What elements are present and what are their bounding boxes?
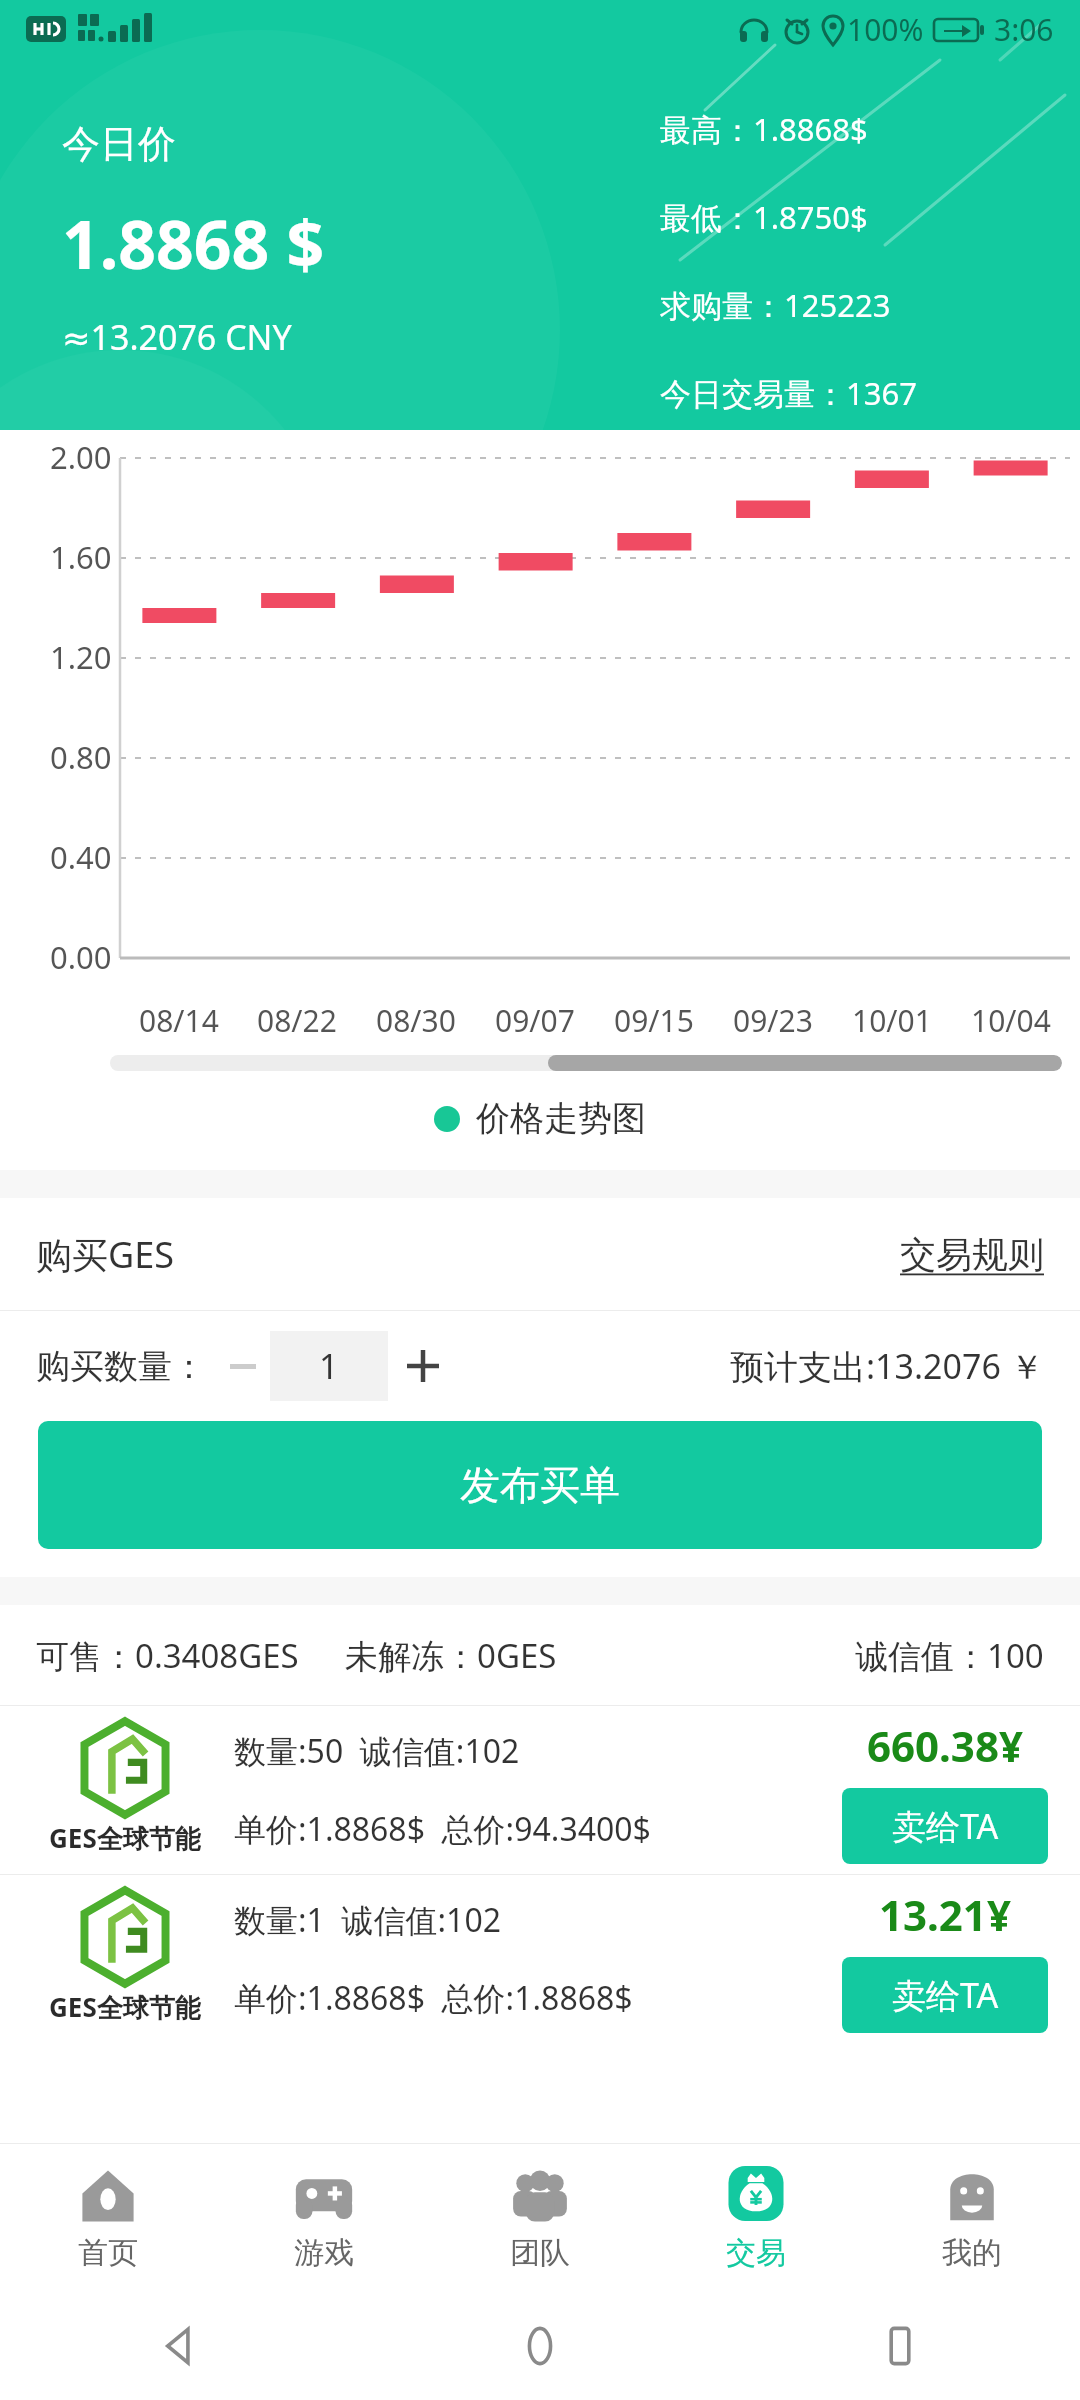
button[interactable]: GES全球节能 [0,1706,1080,1874]
staticText: 13.21¥ [879,1886,1011,1943]
staticText: 08/22 [257,1000,337,1041]
staticText: 1.8868 $ [62,198,325,288]
staticText: 09/23 [733,1000,813,1041]
staticText: 3:06 [994,9,1054,50]
staticText: 最低：1.8750$ [660,196,868,238]
staticText: 卖给TA [892,1972,999,2018]
button[interactable]: 我的 [864,2144,1080,2292]
staticText: 今日交易量：1367 [660,372,917,414]
staticText: 数量:1 诚信值:102 [234,1898,502,1942]
staticText: 1 [319,1343,339,1389]
staticText: GES全球节能 [49,1820,201,1856]
staticText: 10/04 [971,1000,1051,1041]
staticText: 08/30 [376,1000,456,1041]
staticText: 09/15 [614,1000,694,1041]
staticText: 预计支出:13.2076 ￥ [730,1343,1044,1389]
staticText: 09/07 [495,1000,575,1041]
staticText: 发布买单 [460,1460,620,1510]
staticText: 价格走势图 [476,1097,646,1140]
staticText: 求购量：125223 [660,284,891,326]
staticText: 团队 [510,2234,570,2272]
staticText: 1.60 [50,536,112,578]
button[interactable]: 游戏 [216,2144,432,2292]
staticText: 08/14 [139,1000,219,1041]
button[interactable]: 首页 [0,2144,216,2292]
staticText: 购买GES [36,1230,174,1279]
staticText: 交易 [726,2234,786,2272]
staticText: 购买数量： [36,1345,206,1388]
staticText: 未解冻：0GES [345,1633,557,1678]
staticText: 660.38¥ [867,1717,1023,1774]
staticText: 最高：1.8868$ [660,108,868,150]
staticText: 诚信值：100 [855,1633,1044,1678]
staticText: 首页 [78,2234,138,2272]
button[interactable]: 卖给TA [842,1788,1048,1864]
staticText: 游戏 [294,2234,354,2272]
staticText: 0.80 [50,736,112,778]
button[interactable]: 返回 [0,2292,360,2400]
button[interactable]: 交易 [648,2144,864,2292]
staticText: 0.00 [50,936,112,978]
staticText: 0.40 [50,836,112,878]
button[interactable]: 交易规则 [900,1232,1044,1277]
staticText: 单价:1.8868$ 总价:1.8868$ [234,1976,633,2020]
staticText: 单价:1.8868$ 总价:94.3400$ [234,1807,651,1851]
button[interactable]: 主页 [360,2292,720,2400]
button[interactable]: 卖给TA [842,1957,1048,2033]
staticText: 100% [847,9,924,50]
button[interactable]: 最近任务 [720,2292,1080,2400]
staticText: 数量:50 诚信值:102 [234,1729,520,1773]
staticText: 我的 [942,2234,1002,2272]
staticText: 1.20 [50,636,112,678]
button[interactable]: 发布买单 [38,1421,1042,1549]
staticText: 交易规则 [900,1232,1044,1277]
button[interactable]: GES全球节能 [0,1875,1080,2043]
staticText: 卖给TA [892,1803,999,1849]
staticText: 2.00 [50,436,112,478]
button[interactable]: 团队 [432,2144,648,2292]
staticText: 可售：0.3408GES [36,1633,299,1678]
staticText: ≈13.2076 CNY [62,314,292,360]
button[interactable]: 增加 [388,1331,458,1401]
staticText: 今日价 [62,120,176,168]
staticText: 10/01 [852,1000,932,1041]
button[interactable] [216,1336,270,1396]
staticText: GES全球节能 [49,1989,201,2025]
